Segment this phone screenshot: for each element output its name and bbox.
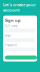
staticText: Full name	[5, 24, 18, 28]
staticText: Let's create your	[3, 2, 36, 7]
staticText: Email	[5, 34, 11, 37]
button[interactable]: Continue	[5, 56, 37, 60]
staticText: Password	[5, 43, 17, 47]
staticText: Sign up	[5, 18, 21, 23]
staticText: account	[3, 7, 20, 13]
